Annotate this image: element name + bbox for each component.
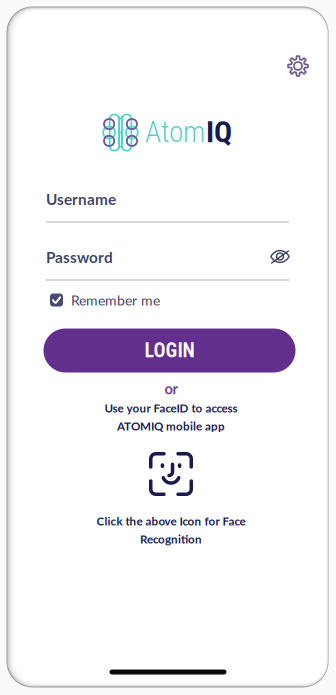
staticText: Atom <box>145 115 205 149</box>
staticText: IQ <box>206 114 232 150</box>
button[interactable]: Sign in with Face ID <box>143 446 199 502</box>
button[interactable]: LOGIN <box>43 328 295 372</box>
button[interactable]: Settings <box>280 48 316 84</box>
staticText: ATOMIQ mobile app <box>117 419 225 433</box>
button[interactable]: Show password <box>263 244 296 270</box>
staticText: Click the above Icon for Face <box>96 514 245 528</box>
staticText: or <box>164 380 177 397</box>
staticText: Recognition <box>140 532 202 546</box>
button[interactable]: Remember me <box>50 290 293 310</box>
staticText: LOGIN <box>144 339 194 362</box>
staticText: Remember me <box>71 292 160 308</box>
staticText: Password <box>46 248 113 266</box>
staticText: Use your FaceID to access <box>104 401 237 415</box>
staticText: Username <box>46 190 116 208</box>
